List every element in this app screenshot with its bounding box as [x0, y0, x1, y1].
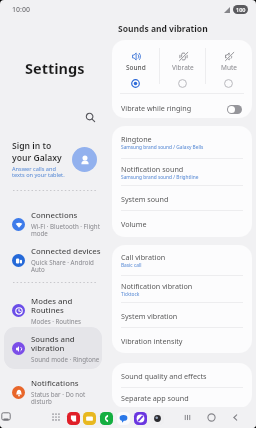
- button[interactable]: Camera: [151, 412, 164, 425]
- staticText: Status bar · Do not disturb: [31, 390, 86, 406]
- staticText: Modes · Routines: [31, 317, 82, 325]
- staticText: Notifications: [31, 378, 79, 389]
- button[interactable]: Notifications: [4, 371, 102, 413]
- staticText: System vibration: [121, 311, 178, 321]
- staticText: Vibrate while ringing: [121, 103, 192, 113]
- button[interactable]: System sound: [112, 186, 252, 211]
- staticText: Quick Share · Android Auto: [31, 258, 94, 274]
- button[interactable]: Separate app sound: [112, 388, 252, 408]
- staticText: Sounds and vibration: [31, 334, 75, 354]
- staticText: Modes and Routines: [31, 296, 73, 316]
- button[interactable]: Connections: [4, 203, 102, 245]
- staticText: Connected devices: [31, 246, 101, 257]
- button[interactable]: Volume: [112, 211, 252, 237]
- staticText: Sound quality and effects: [121, 371, 207, 381]
- staticText: Notification sound: [121, 164, 184, 174]
- staticText: Basic call: [121, 262, 142, 269]
- button[interactable]: Mute: [205, 40, 252, 93]
- button[interactable]: Sounds and vibration: [4, 327, 102, 369]
- staticText: Samsung brand sound / Galaxy Bells: [121, 144, 204, 151]
- staticText: Call vibration: [121, 252, 166, 262]
- button[interactable]: Call vibration: [112, 245, 252, 276]
- staticText: 100: [236, 6, 246, 13]
- staticText: System sound: [121, 194, 169, 204]
- button[interactable]: Task switcher: [1, 412, 11, 422]
- staticText: Volume: [121, 219, 147, 229]
- button[interactable]: Modes and Routines: [4, 289, 102, 331]
- button[interactable]: Apps: [52, 413, 60, 421]
- button[interactable]: Sign in to your Galaxy: [0, 134, 108, 184]
- button[interactable]: System vibration: [112, 303, 252, 328]
- button[interactable]: Notification vibration: [112, 276, 252, 303]
- button[interactable]: Notes: [67, 412, 80, 425]
- staticText: Notification vibration: [121, 281, 193, 291]
- button[interactable]: Home: [204, 410, 219, 425]
- button[interactable]: Search: [81, 108, 99, 126]
- staticText: Settings: [25, 58, 85, 78]
- staticText: Sounds and vibration: [118, 23, 208, 35]
- button[interactable]: Vibration intensity: [112, 328, 252, 353]
- staticText: Sound mode · Ringtone: [31, 355, 100, 363]
- button[interactable]: Sound: [112, 40, 159, 93]
- button[interactable]: Messages: [117, 412, 130, 425]
- button[interactable]: Vibrate while ringing: [112, 94, 252, 118]
- staticText: Mute: [221, 63, 237, 72]
- staticText: Sign in to your Galaxy: [12, 140, 62, 163]
- button[interactable]: Phone: [100, 412, 113, 425]
- staticText: Sound: [126, 63, 146, 72]
- staticText: Vibration intensity: [121, 336, 183, 346]
- button[interactable]: Vibrate while ringing: [227, 105, 242, 114]
- button[interactable]: Notification sound: [112, 159, 252, 186]
- button[interactable]: Internet: [134, 412, 147, 425]
- staticText: Separate app sound: [121, 393, 189, 403]
- staticText: Ticktock: [121, 291, 140, 298]
- staticText: Connections: [31, 210, 78, 221]
- button[interactable]: Connected devices: [4, 239, 102, 281]
- button[interactable]: My Files: [83, 412, 96, 425]
- staticText: 10:00: [12, 5, 30, 15]
- button[interactable]: Recent apps: [180, 410, 195, 425]
- staticText: Ringtone: [121, 134, 152, 144]
- button[interactable]: Back: [228, 410, 243, 425]
- staticText: Wi-Fi · Bluetooth · Flight mode: [31, 222, 100, 238]
- staticText: Vibrate: [172, 63, 194, 72]
- staticText: Answer calls and texts on your tablet.: [12, 165, 65, 179]
- button[interactable]: Vibrate: [159, 40, 206, 93]
- button[interactable]: Sound quality and effects: [112, 363, 252, 388]
- button[interactable]: Ringtone: [112, 126, 252, 159]
- staticText: Samsung brand sound / Brightline: [121, 174, 199, 181]
